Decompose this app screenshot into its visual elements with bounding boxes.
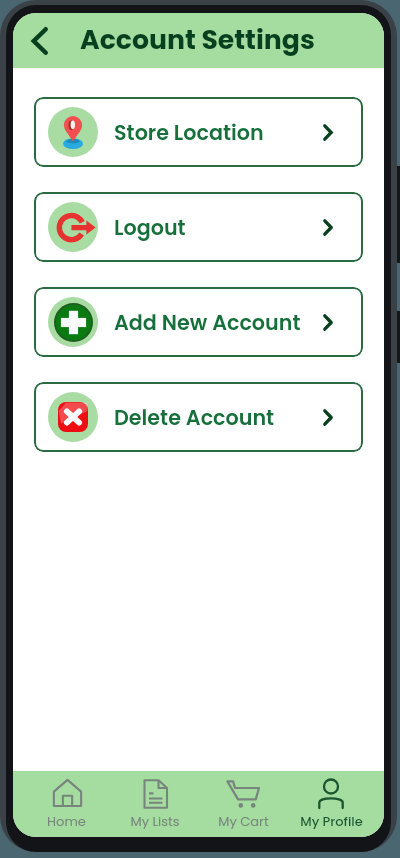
staticText: Store Location xyxy=(114,118,323,147)
button[interactable]: My Cart xyxy=(199,771,287,837)
button[interactable]: Add New Account xyxy=(34,287,363,357)
staticText: My Lists xyxy=(130,812,180,830)
button[interactable]: Store Location xyxy=(34,97,363,167)
staticText: Delete Account xyxy=(114,403,323,432)
staticText: Logout xyxy=(114,213,323,242)
staticText: Add New Account xyxy=(114,308,323,337)
staticText: Account Settings xyxy=(80,21,315,58)
button[interactable]: My Profile xyxy=(287,771,375,837)
button[interactable]: Back xyxy=(18,20,60,62)
button[interactable]: Home xyxy=(22,771,111,837)
button[interactable]: Delete Account xyxy=(34,382,363,452)
staticText: My Profile xyxy=(300,812,363,830)
button[interactable]: Logout xyxy=(34,192,363,262)
staticText: My Cart xyxy=(218,812,269,830)
staticText: Home xyxy=(47,812,86,830)
button[interactable]: My Lists xyxy=(111,771,199,837)
